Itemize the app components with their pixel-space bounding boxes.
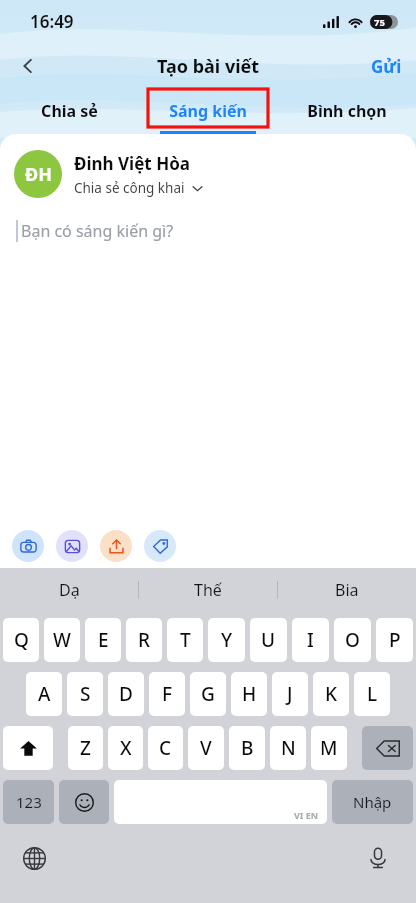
staticText: P: [389, 627, 401, 653]
button[interactable]: Backspace: [362, 726, 413, 770]
staticText: Sáng kiến: [169, 100, 247, 122]
button[interactable]: Chia sẻ công khai: [74, 179, 203, 197]
button[interactable]: X: [108, 726, 143, 770]
button[interactable]: Back: [8, 46, 48, 86]
staticText: 16:49: [30, 10, 74, 33]
staticText: Nhập: [353, 792, 392, 812]
button[interactable]: Emoji: [59, 780, 109, 824]
button[interactable]: Gửi: [357, 47, 416, 86]
button[interactable]: B: [229, 726, 265, 770]
staticText: Bạn có sáng kiến gì?: [21, 220, 174, 242]
button[interactable]: Nhập: [332, 780, 413, 824]
button[interactable]: Q: [3, 618, 39, 662]
staticText: Gửi: [371, 55, 402, 78]
button[interactable]: Space: [114, 780, 327, 824]
button[interactable]: Dạ: [0, 568, 138, 612]
button[interactable]: F: [149, 672, 185, 716]
staticText: Bình chọn: [307, 100, 387, 122]
staticText: ĐH: [25, 162, 52, 187]
staticText: M: [320, 735, 338, 761]
staticText: A: [38, 681, 51, 707]
button[interactable]: N: [270, 726, 306, 770]
staticText: X: [120, 735, 132, 761]
button[interactable]: Bạn có sáng kiến gì?: [16, 220, 416, 242]
button[interactable]: Change keyboard language: [14, 838, 54, 878]
staticText: Z: [80, 735, 91, 761]
staticText: S: [80, 681, 91, 707]
button[interactable]: G: [190, 672, 226, 716]
staticText: Đinh Việt Hòa: [74, 152, 190, 175]
staticText: G: [201, 681, 215, 707]
button[interactable]: S: [67, 672, 103, 716]
staticText: W: [53, 627, 71, 653]
button[interactable]: K: [313, 672, 349, 716]
button[interactable]: H: [231, 672, 267, 716]
staticText: J: [287, 681, 293, 707]
button[interactable]: M: [311, 726, 347, 770]
button[interactable]: W: [44, 618, 80, 662]
staticText: H: [242, 681, 257, 707]
button[interactable]: Thế: [139, 568, 277, 612]
button[interactable]: Z: [68, 726, 103, 770]
staticText: I: [307, 627, 314, 653]
button[interactable]: V: [188, 726, 224, 770]
staticText: Y: [221, 627, 233, 653]
button[interactable]: Upload file: [100, 530, 132, 562]
button[interactable]: Shift: [3, 726, 53, 770]
button[interactable]: Bia: [278, 568, 416, 612]
button[interactable]: Photo library: [56, 530, 88, 562]
button[interactable]: Tag: [144, 530, 176, 562]
button[interactable]: D: [108, 672, 144, 716]
staticText: Tạo bài viết: [157, 54, 260, 79]
staticText: 75: [374, 16, 385, 29]
staticText: E: [98, 627, 109, 653]
staticText: L: [367, 681, 378, 707]
staticText: D: [119, 681, 133, 707]
button[interactable]: Y: [208, 618, 245, 662]
button[interactable]: P: [376, 618, 413, 662]
staticText: F: [162, 681, 173, 707]
button[interactable]: I: [292, 618, 329, 662]
staticText: N: [281, 735, 296, 761]
button[interactable]: O: [334, 618, 371, 662]
button[interactable]: Bình chọn: [277, 88, 416, 134]
staticText: VI EN: [294, 809, 319, 821]
staticText: T: [180, 627, 191, 653]
button[interactable]: Camera: [12, 530, 44, 562]
button[interactable]: A: [26, 672, 62, 716]
staticText: R: [138, 627, 151, 653]
staticText: Chia sẻ công khai: [74, 179, 185, 197]
staticText: Q: [14, 627, 29, 653]
button[interactable]: T: [167, 618, 203, 662]
button[interactable]: U: [250, 618, 287, 662]
staticText: Thế: [194, 579, 222, 601]
staticText: V: [200, 735, 212, 761]
staticText: B: [241, 735, 254, 761]
staticText: Chia sẻ: [41, 100, 98, 122]
staticText: C: [159, 735, 172, 761]
button[interactable]: C: [148, 726, 183, 770]
button[interactable]: Voice input: [358, 838, 398, 878]
staticText: Bia: [335, 579, 359, 601]
staticText: Dạ: [59, 579, 80, 601]
button[interactable]: J: [272, 672, 308, 716]
staticText: K: [325, 681, 338, 707]
button[interactable]: L: [354, 672, 390, 716]
button[interactable]: Sáng kiến: [138, 88, 277, 134]
button[interactable]: R: [126, 618, 162, 662]
staticText: 123: [16, 792, 42, 812]
staticText: O: [345, 627, 360, 653]
staticText: U: [261, 627, 276, 653]
button[interactable]: 123: [3, 780, 54, 824]
button[interactable]: Chia sẻ: [0, 88, 138, 134]
button[interactable]: E: [85, 618, 121, 662]
